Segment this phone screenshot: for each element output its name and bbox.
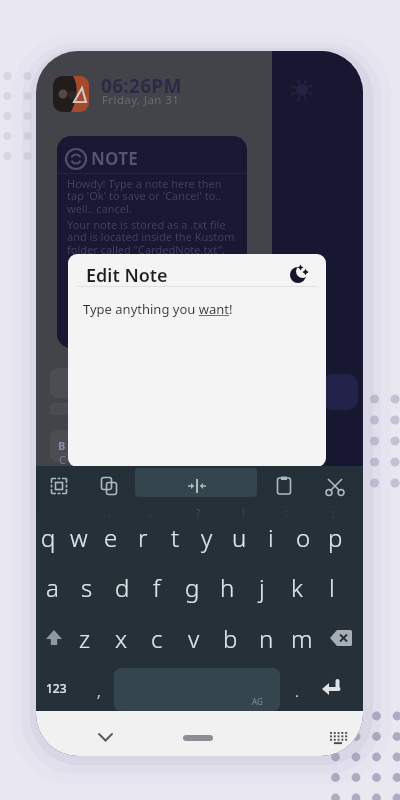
button[interactable]: NOTE [57,136,247,348]
button[interactable]: v [178,618,210,658]
button[interactable]: m [286,618,318,658]
button[interactable] [325,620,357,656]
staticText: t [171,521,180,554]
staticText: o [296,521,311,554]
button[interactable]: l [316,567,348,607]
staticText: . [108,506,111,520]
button[interactable]: j [246,567,278,607]
staticText: 123 [46,680,67,696]
button[interactable]: d [106,567,138,607]
button[interactable]: y [191,517,223,557]
button[interactable]: x [105,618,137,658]
staticText: ; [332,506,335,520]
staticText: c [151,622,163,655]
button[interactable] [89,727,121,747]
staticText: Your note is stored as a .txt file and i… [67,217,235,257]
staticText: e [104,521,118,554]
button[interactable]: AG [114,668,280,711]
button[interactable]: 123 [40,668,72,708]
staticText: p [328,521,343,554]
staticText: , [97,680,101,702]
staticText: NOTE [91,147,138,170]
button[interactable] [315,670,347,706]
staticText: g [185,571,200,604]
staticText: ! [242,506,245,520]
staticText: u [232,521,247,554]
staticText: . [295,680,299,702]
button[interactable]: z [69,618,101,658]
staticText: k [291,571,303,604]
button[interactable]: p [319,517,351,557]
staticText: Friday, Jan 31 [102,92,180,108]
staticText: q [41,521,56,554]
staticText: l [329,571,335,604]
button[interactable]: n [250,618,282,658]
button[interactable]: s [71,567,103,607]
button[interactable]: a [36,567,68,607]
staticText: , [149,506,152,520]
staticText: w [70,521,88,554]
button[interactable]: , [83,671,115,711]
staticText: m [291,622,313,655]
button[interactable] [38,620,70,656]
staticText: Edit Note [86,263,168,288]
button[interactable]: k [281,567,313,607]
button[interactable]: i [255,517,287,557]
staticText: h [220,571,235,604]
button[interactable]: o [287,517,319,557]
staticText: f [153,571,161,604]
staticText: ? [196,506,201,520]
staticText: n [259,622,274,655]
button[interactable] [53,76,89,112]
button[interactable]: e [95,517,127,557]
staticText: d [115,571,130,604]
staticText: b [223,622,238,655]
staticText: AG [252,696,263,707]
staticText: 06:26PM [101,73,182,99]
staticText: Howdy! Type a note here then tap 'Ok' to… [67,176,222,216]
button[interactable]: w [63,517,95,557]
staticText: j [259,571,265,604]
staticText: a [46,571,59,604]
staticText: i [268,521,274,554]
button[interactable]: r [127,517,159,557]
staticText: C [59,452,66,467]
button[interactable] [324,727,354,749]
staticText: : [285,506,288,520]
staticText: z [79,622,91,655]
button[interactable]: b [214,618,246,658]
staticText: x [115,622,128,655]
staticText: B [58,438,66,453]
button[interactable] [183,735,213,741]
button[interactable] [135,468,257,497]
button[interactable]: q [36,517,64,557]
staticText: r [138,521,148,554]
button[interactable]: h [211,567,243,607]
staticText: y [201,521,213,554]
button[interactable]: t [159,517,191,557]
button[interactable]: c [141,618,173,658]
staticText: v [188,622,200,655]
staticText: Type anything you want! [83,300,233,318]
button[interactable]: f [141,567,173,607]
button[interactable]: g [176,567,208,607]
button[interactable]: . [281,671,313,711]
button[interactable]: u [223,517,255,557]
staticText: s [81,571,93,604]
